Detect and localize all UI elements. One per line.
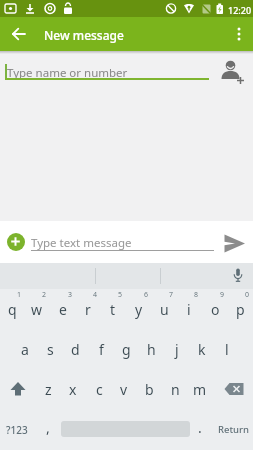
- button[interactable]: f: [89, 329, 113, 369]
- staticText: 8: [194, 290, 199, 300]
- button[interactable]: ,: [38, 407, 58, 448]
- button[interactable]: e: [51, 289, 75, 329]
- button[interactable]: [228, 21, 252, 45]
- button[interactable]: a: [13, 329, 37, 369]
- staticText: j: [175, 340, 179, 359]
- staticText: 2: [42, 290, 47, 300]
- button[interactable]: t: [101, 289, 125, 329]
- button[interactable]: [228, 266, 248, 286]
- staticText: c: [96, 380, 103, 399]
- button[interactable]: g: [114, 329, 138, 369]
- staticText: m: [193, 380, 207, 399]
- staticText: l: [225, 340, 229, 359]
- button[interactable]: i: [177, 289, 201, 329]
- button[interactable]: b: [137, 369, 161, 409]
- button[interactable]: [221, 231, 248, 257]
- staticText: d: [71, 340, 80, 359]
- staticText: 12:20: [228, 4, 252, 16]
- button[interactable]: w: [25, 289, 49, 329]
- button[interactable]: n: [163, 369, 187, 409]
- staticText: w: [31, 300, 43, 319]
- button[interactable]: x: [61, 369, 85, 409]
- staticText: Type text message: [31, 235, 132, 251]
- button[interactable]: l: [215, 329, 239, 369]
- button[interactable]: m: [188, 369, 212, 409]
- button[interactable]: j: [165, 329, 189, 369]
- button[interactable]: y: [127, 289, 151, 329]
- staticText: Return: [218, 423, 250, 436]
- button[interactable]: Return: [214, 409, 253, 450]
- button[interactable]: k: [190, 329, 214, 369]
- button[interactable]: c: [87, 369, 111, 409]
- staticText: n: [171, 380, 180, 399]
- staticText: e: [59, 300, 67, 319]
- button[interactable]: u: [152, 289, 176, 329]
- staticText: 7: [169, 290, 174, 300]
- staticText: x: [69, 380, 77, 399]
- button[interactable]: z: [36, 369, 60, 409]
- staticText: r: [85, 300, 91, 319]
- button[interactable]: q: [0, 289, 24, 329]
- staticText: New message: [44, 27, 124, 43]
- staticText: u: [160, 300, 169, 319]
- button[interactable]: r: [76, 289, 100, 329]
- button[interactable]: .: [190, 407, 210, 448]
- staticText: 3: [68, 290, 73, 300]
- staticText: f: [99, 340, 104, 359]
- staticText: v: [120, 380, 128, 399]
- staticText: 6: [144, 290, 149, 300]
- staticText: o: [211, 300, 220, 319]
- staticText: y: [135, 300, 143, 319]
- button[interactable]: [7, 233, 25, 251]
- button[interactable]: d: [63, 329, 87, 369]
- button[interactable]: [217, 58, 245, 86]
- button[interactable]: [4, 369, 32, 409]
- staticText: 1: [17, 290, 22, 300]
- staticText: g: [122, 340, 131, 359]
- staticText: p: [236, 300, 245, 319]
- staticText: 5: [118, 290, 123, 300]
- staticText: ,: [46, 418, 50, 437]
- staticText: h: [147, 340, 156, 359]
- button[interactable]: v: [112, 369, 136, 409]
- button[interactable]: [221, 369, 249, 409]
- staticText: .: [198, 418, 202, 437]
- button[interactable]: o: [203, 289, 227, 329]
- staticText: t: [110, 300, 116, 319]
- staticText: s: [47, 340, 54, 359]
- button[interactable]: p: [228, 289, 252, 329]
- staticText: b: [145, 380, 154, 399]
- button[interactable]: h: [139, 329, 163, 369]
- staticText: a: [21, 340, 29, 359]
- staticText: ?123: [6, 423, 28, 437]
- button[interactable]: s: [38, 329, 62, 369]
- staticText: 4: [93, 290, 98, 300]
- staticText: z: [45, 380, 52, 399]
- staticText: 0: [245, 290, 250, 300]
- button[interactable]: [6, 21, 32, 47]
- button[interactable]: ?123: [2, 409, 32, 450]
- staticText: Type name or number: [7, 65, 128, 81]
- staticText: q: [8, 300, 17, 319]
- staticText: i: [187, 300, 191, 319]
- staticText: 9: [220, 290, 225, 300]
- staticText: k: [198, 340, 206, 359]
